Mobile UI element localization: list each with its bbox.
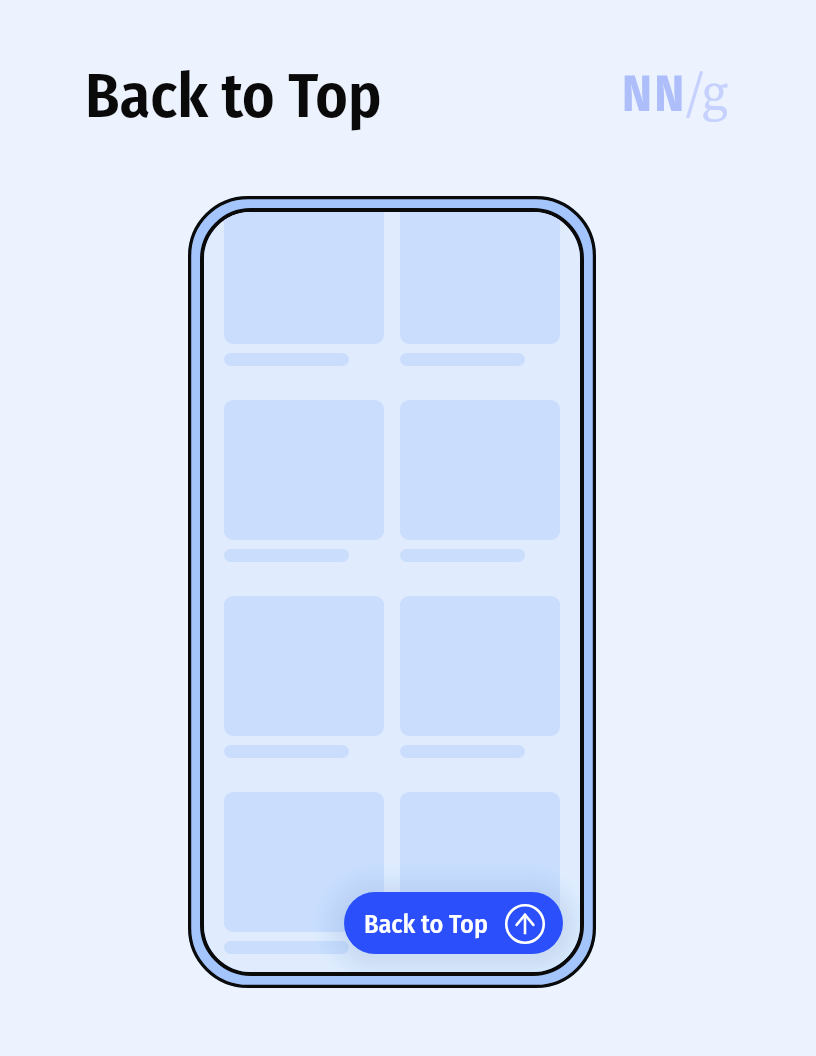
button[interactable]: Item 5 — [224, 596, 384, 758]
button[interactable]: Item 2 — [400, 212, 560, 366]
button[interactable]: Item 4 — [400, 400, 560, 562]
other: Back to top — [505, 904, 545, 944]
staticText: NN — [622, 64, 687, 124]
button[interactable]: Back to Top — [344, 892, 563, 954]
button[interactable]: Item 1 — [224, 212, 384, 366]
staticText: Back to Top — [85, 59, 382, 133]
staticText: Back to Top — [364, 909, 488, 940]
button[interactable]: Item 6 — [400, 596, 560, 758]
button[interactable]: Item 3 — [224, 400, 384, 562]
staticText: /g — [686, 55, 729, 126]
button[interactable]: Item 8 — [400, 792, 560, 954]
button[interactable]: Item 7 — [224, 792, 384, 954]
